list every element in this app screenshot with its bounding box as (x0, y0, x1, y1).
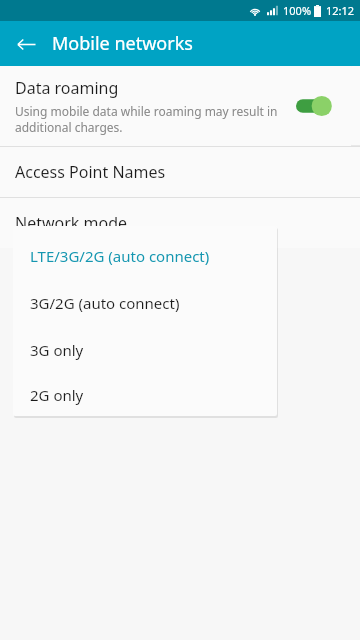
button[interactable]: Data roaming switch (293, 91, 339, 121)
staticText: Network mode (15, 212, 128, 234)
staticText: 12:12 (326, 3, 355, 18)
button[interactable]: 3G/2G (auto connect) (13, 279, 277, 326)
staticText: Data roaming (15, 77, 119, 99)
staticText: 2G only (30, 385, 84, 405)
staticText: Access Point Names (15, 161, 166, 183)
staticText: 3G only (30, 340, 84, 360)
button[interactable]: Navigate up (8, 26, 44, 62)
button[interactable]: 3G only (13, 326, 277, 373)
staticText: 3G/2G (auto connect) (30, 293, 180, 313)
staticText: LTE/3G/2G (auto connect) (30, 246, 210, 266)
button[interactable]: Data roaming (0, 66, 351, 146)
staticText: Using mobile data while roaming may resu… (15, 103, 278, 135)
staticText: 100% (283, 3, 312, 18)
staticText: Mobile networks (52, 31, 193, 56)
button[interactable]: LTE/3G/2G (auto connect) (13, 232, 277, 279)
button[interactable]: 2G only (13, 373, 277, 416)
button[interactable]: Access Point Names (0, 147, 360, 197)
button[interactable]: Network mode (0, 198, 360, 248)
